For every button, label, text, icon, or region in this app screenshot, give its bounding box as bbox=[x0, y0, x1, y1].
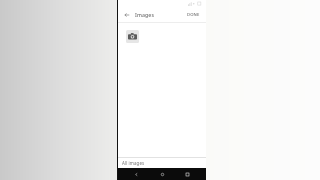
button[interactable]: Home bbox=[155, 168, 169, 180]
staticText: Images bbox=[135, 11, 155, 18]
button[interactable]: Recents bbox=[180, 168, 194, 180]
button[interactable]: Take photo bbox=[126, 30, 139, 43]
staticText: All images bbox=[122, 160, 145, 166]
button[interactable]: Back bbox=[129, 168, 143, 180]
staticText: DONE bbox=[187, 12, 200, 18]
button[interactable]: All images bbox=[117, 158, 206, 168]
button[interactable]: Back bbox=[121, 9, 132, 20]
button[interactable]: DONE bbox=[185, 11, 202, 19]
